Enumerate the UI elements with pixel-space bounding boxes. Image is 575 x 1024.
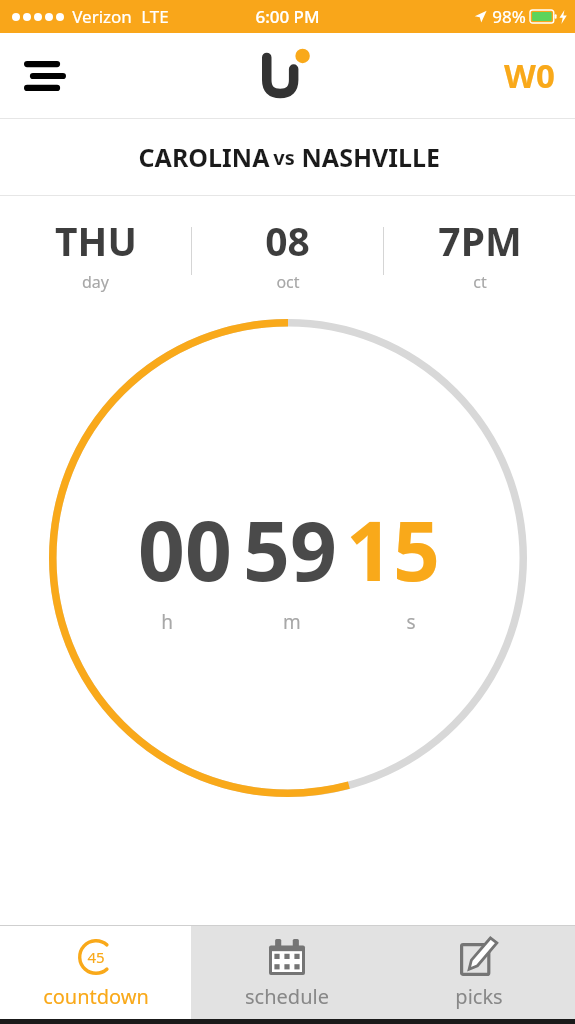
button[interactable]: Schedule xyxy=(191,926,383,1019)
staticText: day xyxy=(82,271,109,293)
staticText: THU xyxy=(55,214,137,267)
staticText: schedule xyxy=(245,983,329,1010)
staticText: 7PM xyxy=(438,214,522,267)
staticText: 98% xyxy=(492,5,526,28)
staticText: W0 xyxy=(504,53,555,98)
staticText: LTE xyxy=(141,5,169,28)
staticText: CAROLINA xyxy=(135,140,273,174)
staticText: 00 xyxy=(138,493,232,605)
staticText: Verizon xyxy=(72,5,132,28)
staticText: h xyxy=(161,609,173,635)
staticText: NASHVILLE xyxy=(295,140,440,174)
button[interactable]: Menu xyxy=(18,49,72,103)
staticText: m xyxy=(283,609,301,635)
other: Picks xyxy=(460,938,498,976)
staticText: s xyxy=(406,609,416,635)
staticText: 15 xyxy=(346,493,440,605)
staticText: ct xyxy=(473,271,487,293)
staticText: countdown xyxy=(43,983,149,1010)
button[interactable]: Picks xyxy=(383,926,575,1019)
other: Schedule xyxy=(269,939,305,975)
staticText: 08 xyxy=(265,214,310,267)
button[interactable]: W0 xyxy=(498,47,561,104)
staticText: 6:00 PM xyxy=(255,5,320,28)
staticText: picks xyxy=(455,983,503,1010)
staticText: 45 xyxy=(87,947,105,967)
button[interactable]: 45 xyxy=(0,926,191,1019)
staticText: oct xyxy=(276,271,300,293)
staticText: vs xyxy=(273,144,295,171)
staticText: 59 xyxy=(243,493,337,605)
